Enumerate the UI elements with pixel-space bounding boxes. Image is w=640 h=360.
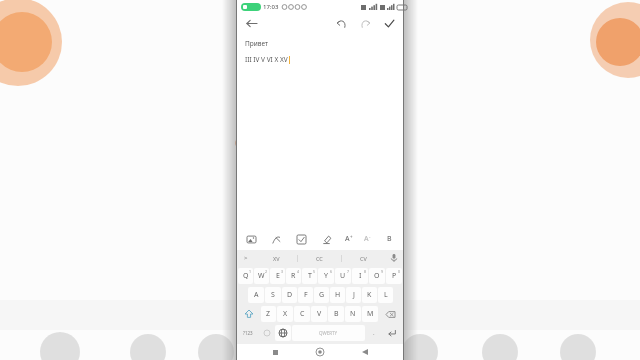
button[interactable]: N: [345, 306, 361, 322]
staticText: H: [335, 290, 341, 300]
staticText: F: [304, 290, 308, 300]
button[interactable]: V: [311, 306, 327, 322]
button[interactable]: More: [237, 250, 255, 266]
staticText: 3: [281, 269, 284, 274]
staticText: CV: [360, 255, 367, 262]
button[interactable]: Undo: [333, 15, 349, 31]
staticText: R: [291, 271, 296, 281]
staticText: 2: [265, 269, 268, 274]
button[interactable]: Text size +: [345, 232, 353, 246]
staticText: 5: [313, 269, 316, 274]
staticText: Привет: [245, 39, 268, 48]
button[interactable]: M: [362, 306, 378, 322]
staticText: -: [369, 234, 371, 240]
staticText: +: [350, 234, 353, 240]
button[interactable]: I: [352, 268, 368, 284]
staticText: B: [334, 309, 339, 319]
button[interactable]: Voice input: [385, 250, 403, 266]
button[interactable]: P: [386, 268, 402, 284]
staticText: .: [373, 329, 375, 337]
staticText: 6: [330, 269, 333, 274]
staticText: 8: [364, 269, 367, 274]
staticText: J: [353, 290, 355, 300]
button[interactable]: Back: [358, 345, 372, 359]
button[interactable]: A: [248, 287, 264, 303]
staticText: S: [271, 290, 275, 300]
button[interactable]: Insert image: [244, 232, 258, 246]
button[interactable]: Enter: [382, 325, 402, 341]
staticText: E: [276, 271, 280, 281]
staticText: 4: [297, 269, 300, 274]
staticText: D: [287, 290, 293, 300]
button[interactable]: Q: [238, 268, 253, 284]
staticText: I: [359, 271, 362, 281]
staticText: Z: [266, 309, 271, 319]
staticText: 9: [381, 269, 384, 274]
staticText: 1: [249, 269, 252, 274]
staticText: U: [340, 271, 346, 281]
button[interactable]: D: [282, 287, 297, 303]
staticText: M: [367, 309, 374, 319]
staticText: XV: [273, 255, 280, 262]
button[interactable]: C: [294, 306, 310, 322]
button[interactable]: Text size -: [364, 232, 371, 246]
button[interactable]: Back: [243, 15, 259, 31]
staticText: CC: [316, 255, 323, 262]
button[interactable]: Highlight: [320, 232, 334, 246]
staticText: T: [308, 271, 312, 281]
button[interactable]: ?123: [238, 325, 258, 341]
button[interactable]: G: [314, 287, 329, 303]
staticText: G: [319, 290, 325, 300]
button[interactable]: CC: [298, 250, 341, 266]
staticText: ?123: [243, 330, 253, 336]
staticText: A: [254, 290, 259, 300]
button[interactable]: Z: [261, 306, 276, 322]
staticText: QWERTY: [319, 330, 338, 336]
staticText: K: [367, 290, 372, 300]
button[interactable]: Checklist: [294, 232, 308, 246]
button[interactable]: E: [270, 268, 285, 284]
staticText: 7: [347, 269, 350, 274]
staticText: O: [374, 271, 380, 281]
button[interactable]: K: [362, 287, 377, 303]
button[interactable]: O: [369, 268, 385, 284]
button[interactable]: W: [254, 268, 269, 284]
button[interactable]: Home: [313, 345, 327, 359]
staticText: 17:03: [263, 3, 279, 11]
button[interactable]: Backspace: [379, 306, 402, 322]
button[interactable]: X: [277, 306, 293, 322]
button[interactable]: H: [330, 287, 345, 303]
button[interactable]: L: [378, 287, 393, 303]
staticText: V: [317, 309, 322, 319]
staticText: >: [244, 254, 248, 262]
button[interactable]: Draw: [269, 232, 283, 246]
staticText: L: [384, 290, 388, 300]
button[interactable]: Redo: [357, 15, 373, 31]
button[interactable]: Y: [318, 268, 334, 284]
staticText: A: [345, 234, 350, 244]
staticText: C: [300, 309, 305, 319]
button[interactable]: T: [302, 268, 317, 284]
staticText: Q: [243, 271, 249, 281]
button[interactable]: F: [298, 287, 313, 303]
button[interactable]: Change language: [275, 325, 291, 341]
button[interactable]: B: [382, 232, 396, 246]
button[interactable]: U: [335, 268, 351, 284]
staticText: P: [392, 271, 397, 281]
button[interactable]: Done: [381, 15, 397, 31]
button[interactable]: R: [286, 268, 301, 284]
button[interactable]: B: [328, 306, 344, 322]
staticText: X: [283, 309, 288, 319]
staticText: W: [258, 271, 265, 281]
button[interactable]: S: [265, 287, 281, 303]
staticText: B: [387, 234, 392, 244]
staticText: N: [350, 309, 356, 319]
button[interactable]: J: [346, 287, 361, 303]
button[interactable]: XV: [255, 250, 297, 266]
button[interactable]: Shift: [238, 306, 260, 322]
button[interactable]: Recents: [268, 345, 282, 359]
button[interactable]: Emoji: [259, 325, 274, 341]
button[interactable]: CV: [342, 250, 385, 266]
button[interactable]: QWERTY: [292, 325, 365, 341]
